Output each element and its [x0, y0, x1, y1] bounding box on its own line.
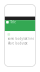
staticText: Title	[10, 20, 16, 24]
staticText: More body text	[7, 42, 27, 45]
staticText: Some body text line	[7, 37, 34, 40]
